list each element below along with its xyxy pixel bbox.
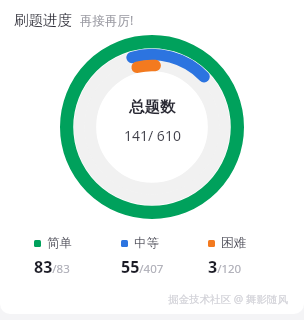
staticText: 3/120: [208, 256, 242, 278]
staticText: 141/ 610: [124, 126, 181, 145]
staticText: 总题数: [129, 97, 176, 117]
button[interactable]: 中等: [121, 235, 208, 278]
other: 刷题进度环形图: [60, 35, 244, 219]
staticText: 再接再厉!: [80, 12, 134, 29]
staticText: 困难: [221, 235, 246, 251]
staticText: 中等: [134, 235, 159, 251]
staticText: 简单: [47, 235, 72, 251]
staticText: 55/407: [121, 256, 164, 278]
staticText: 刷题进度: [14, 11, 72, 29]
staticText: 83/83: [34, 256, 70, 278]
button[interactable]: 困难: [208, 235, 286, 278]
button[interactable]: 简单: [34, 235, 121, 278]
staticText: 掘金技术社区 @ 舞影随风: [168, 292, 288, 306]
